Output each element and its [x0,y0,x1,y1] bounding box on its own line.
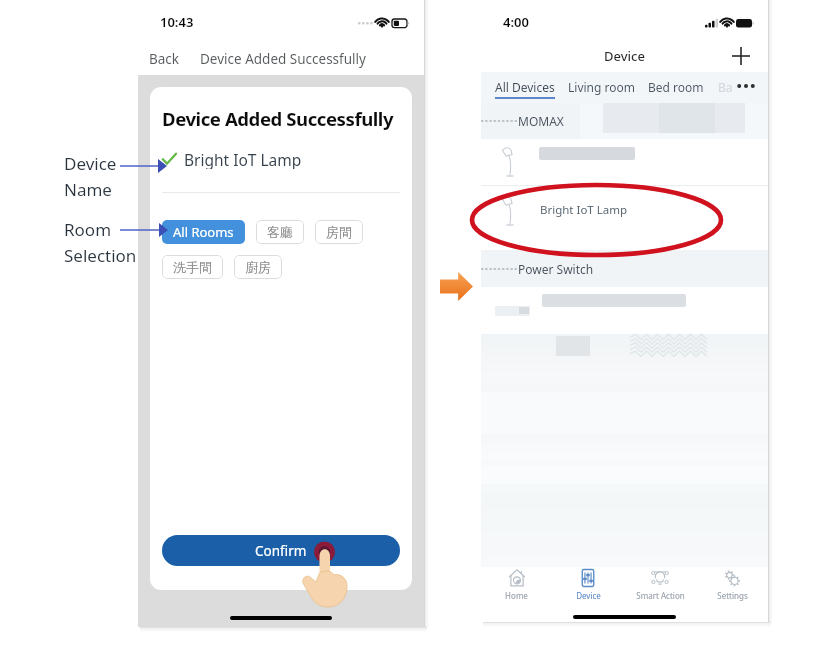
staticText: Confirm [255,542,307,560]
button[interactable]: More tabs [737,81,754,91]
button[interactable]: Bright IoT Lamp [481,186,768,250]
staticText: Power Switch [518,261,594,277]
button[interactable]: 房間 [315,220,363,244]
staticText: Name [64,178,112,201]
staticText: Bright IoT Lamp [184,149,302,169]
button[interactable]: Add device [730,45,752,67]
staticText: Device Added Successfully [162,106,394,131]
button[interactable]: Back [149,50,180,68]
staticText: Device [604,47,645,65]
button[interactable]: 洗手間 [162,255,223,279]
staticText: Selection [64,244,137,267]
button[interactable]: Confirm [162,535,400,566]
button[interactable]: Bed room [648,79,704,95]
staticText: 房間 [326,224,352,240]
staticText: 客廳 [267,224,293,240]
staticText: Device [576,590,601,601]
button[interactable]: Settings [696,567,768,603]
staticText: Device Added Successfully [200,50,366,68]
staticText: Home [505,590,528,601]
button[interactable]: Device [552,567,624,603]
staticText: Ba [718,79,733,95]
button[interactable]: All Devices [495,79,555,95]
button[interactable]: Living room [568,79,635,95]
staticText: Smart Action [636,590,685,601]
button[interactable]: All Rooms [162,220,245,244]
button[interactable]: 客廳 [256,220,304,244]
staticText: 洗手間 [173,259,212,275]
button[interactable]: Smart Action [624,567,696,603]
staticText: All Rooms [173,223,234,241]
staticText: All Devices [495,79,555,95]
staticText: Device [64,152,117,175]
staticText: Living room [568,79,635,95]
staticText: Bright IoT Lamp [540,202,628,218]
staticText: Room [64,218,112,241]
staticText: 廚房 [245,259,271,275]
button[interactable]: Home [481,567,552,603]
button[interactable]: 廚房 [234,255,282,279]
staticText: Settings [717,590,748,601]
staticText: Bed room [648,79,704,95]
staticText: MOMAX [518,113,564,129]
staticText: 4:00 [503,13,529,31]
staticText: 10:43 [160,13,194,31]
